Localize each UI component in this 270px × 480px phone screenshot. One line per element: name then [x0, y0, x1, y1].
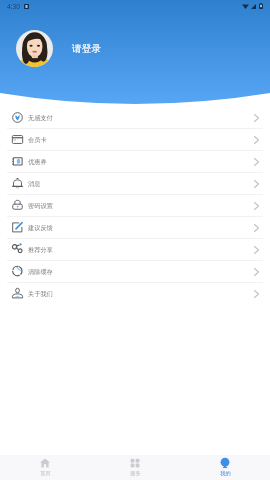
staticText: 4:30 — [7, 2, 20, 11]
staticText: 清除缓存 — [28, 268, 53, 276]
button[interactable]: 服务 — [90, 455, 180, 480]
staticText: 关于我们 — [28, 290, 53, 298]
button[interactable]: Profile photo — [16, 30, 53, 67]
staticText: 建议反馈 — [28, 224, 53, 232]
staticText: 优惠券 — [28, 158, 47, 166]
staticText: 无感支付 — [28, 114, 53, 122]
button[interactable]: 关于我们 — [0, 283, 270, 305]
staticText: 首页 — [40, 470, 51, 477]
staticText: 密码设置 — [28, 202, 53, 210]
button[interactable]: 会员卡 — [0, 129, 270, 151]
button[interactable]: 我的 — [180, 455, 270, 480]
staticText: 消息 — [28, 180, 41, 188]
button[interactable]: 优惠券 — [0, 151, 270, 173]
button[interactable]: 消息 — [0, 173, 270, 195]
button[interactable]: 首页 — [0, 455, 90, 480]
button[interactable]: 密码设置 — [0, 195, 270, 217]
staticText: 推荐分享 — [28, 246, 53, 254]
button[interactable]: 清除缓存 — [0, 261, 270, 283]
staticText: 我的 — [220, 470, 231, 477]
button[interactable]: 推荐分享 — [0, 239, 270, 261]
staticText: 服务 — [130, 470, 141, 477]
button[interactable]: 无感支付 — [0, 107, 270, 129]
staticText: 会员卡 — [28, 136, 47, 144]
staticText: 请登录 — [72, 43, 102, 55]
button[interactable]: 建议反馈 — [0, 217, 270, 239]
